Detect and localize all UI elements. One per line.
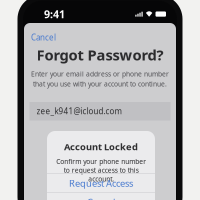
button[interactable]: Cancel [23, 29, 64, 45]
staticText: 9:41 [44, 7, 65, 21]
button[interactable]: Request Access [47, 174, 155, 192]
button[interactable]: Cancel [47, 193, 155, 200]
staticText: Confirm your phone number to request acc… [56, 157, 146, 183]
staticText: Account Locked [64, 140, 138, 153]
staticText: zee_k941@icloud.com [36, 106, 121, 116]
staticText: Forgot Password? [36, 45, 163, 64]
staticText: Cancel [87, 196, 115, 200]
staticText: Enter your email address or phone number [31, 69, 169, 78]
staticText: that you use with your account to contin… [33, 80, 167, 88]
staticText: Cancel [31, 32, 56, 43]
staticText: Request Access [69, 177, 133, 189]
